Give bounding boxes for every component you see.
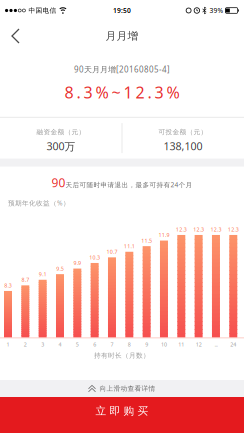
staticText: 138,100 (164, 139, 203, 153)
staticText: 预期年化收益（%） (8, 198, 70, 207)
staticText: 5 (76, 341, 79, 348)
staticText: 12 (196, 341, 202, 348)
staticText: 10.7 (106, 248, 117, 255)
staticText: 9.9 (73, 259, 81, 266)
staticText: 90天月月增[20160805-4] (74, 64, 170, 75)
staticText: 10 (161, 341, 167, 348)
staticText: 可投金额（元） (159, 128, 208, 136)
staticText: 19:50 (113, 6, 131, 15)
button[interactable]: 立即购买 (0, 397, 244, 433)
button[interactable]: 返回 (0, 25, 27, 47)
staticText: 7 (110, 341, 113, 348)
staticText: 8 (64, 82, 73, 103)
staticText: 2 (135, 82, 144, 103)
staticText: 中国电信 (28, 6, 56, 15)
staticText: 12.3 (176, 226, 187, 233)
staticText: 11.1 (124, 243, 135, 250)
staticText: 6 (93, 341, 96, 348)
staticText: 300万 (46, 139, 75, 153)
staticText: 11 (178, 341, 184, 348)
staticText: 12.3 (210, 226, 221, 233)
staticText: 3 (83, 82, 92, 103)
staticText: 天后可随时申请退出，最多可持有24个月 (65, 180, 192, 189)
staticText: 8.7 (21, 276, 29, 283)
staticText: 8 (128, 341, 131, 348)
staticText: 向上滑动查看详情 (99, 384, 155, 393)
staticText: 11.9 (158, 231, 169, 238)
staticText: 12.3 (193, 226, 204, 233)
staticText: 月月增 (105, 29, 138, 42)
button[interactable]: 向上滑动查看详情 (0, 380, 244, 397)
staticText: 3 (154, 82, 163, 103)
staticText: . (147, 82, 151, 103)
staticText: 1 (123, 82, 132, 103)
staticText: ... (214, 341, 217, 348)
staticText: 4 (58, 341, 61, 348)
staticText: 10.3 (89, 254, 100, 261)
staticText: 39% (210, 6, 224, 15)
staticText: % (95, 82, 108, 103)
staticText: % (166, 82, 179, 103)
staticText: 1 (6, 341, 9, 348)
staticText: 立即购买 (95, 404, 148, 417)
staticText: 2 (24, 341, 27, 348)
staticText: 9.5 (56, 265, 64, 272)
staticText: 90 (51, 175, 65, 190)
staticText: 9 (145, 341, 148, 348)
staticText: . (76, 82, 80, 103)
staticText: 8.3 (4, 282, 12, 289)
staticText: 9.1 (39, 271, 46, 278)
staticText: 3 (41, 341, 44, 348)
staticText: ~ (111, 82, 120, 103)
staticText: 11.5 (141, 237, 152, 244)
staticText: 12.3 (228, 226, 239, 233)
staticText: 融资金额（元） (36, 128, 85, 136)
staticText: 24 (230, 341, 236, 348)
staticText: 持有时长（月数） (94, 351, 150, 360)
